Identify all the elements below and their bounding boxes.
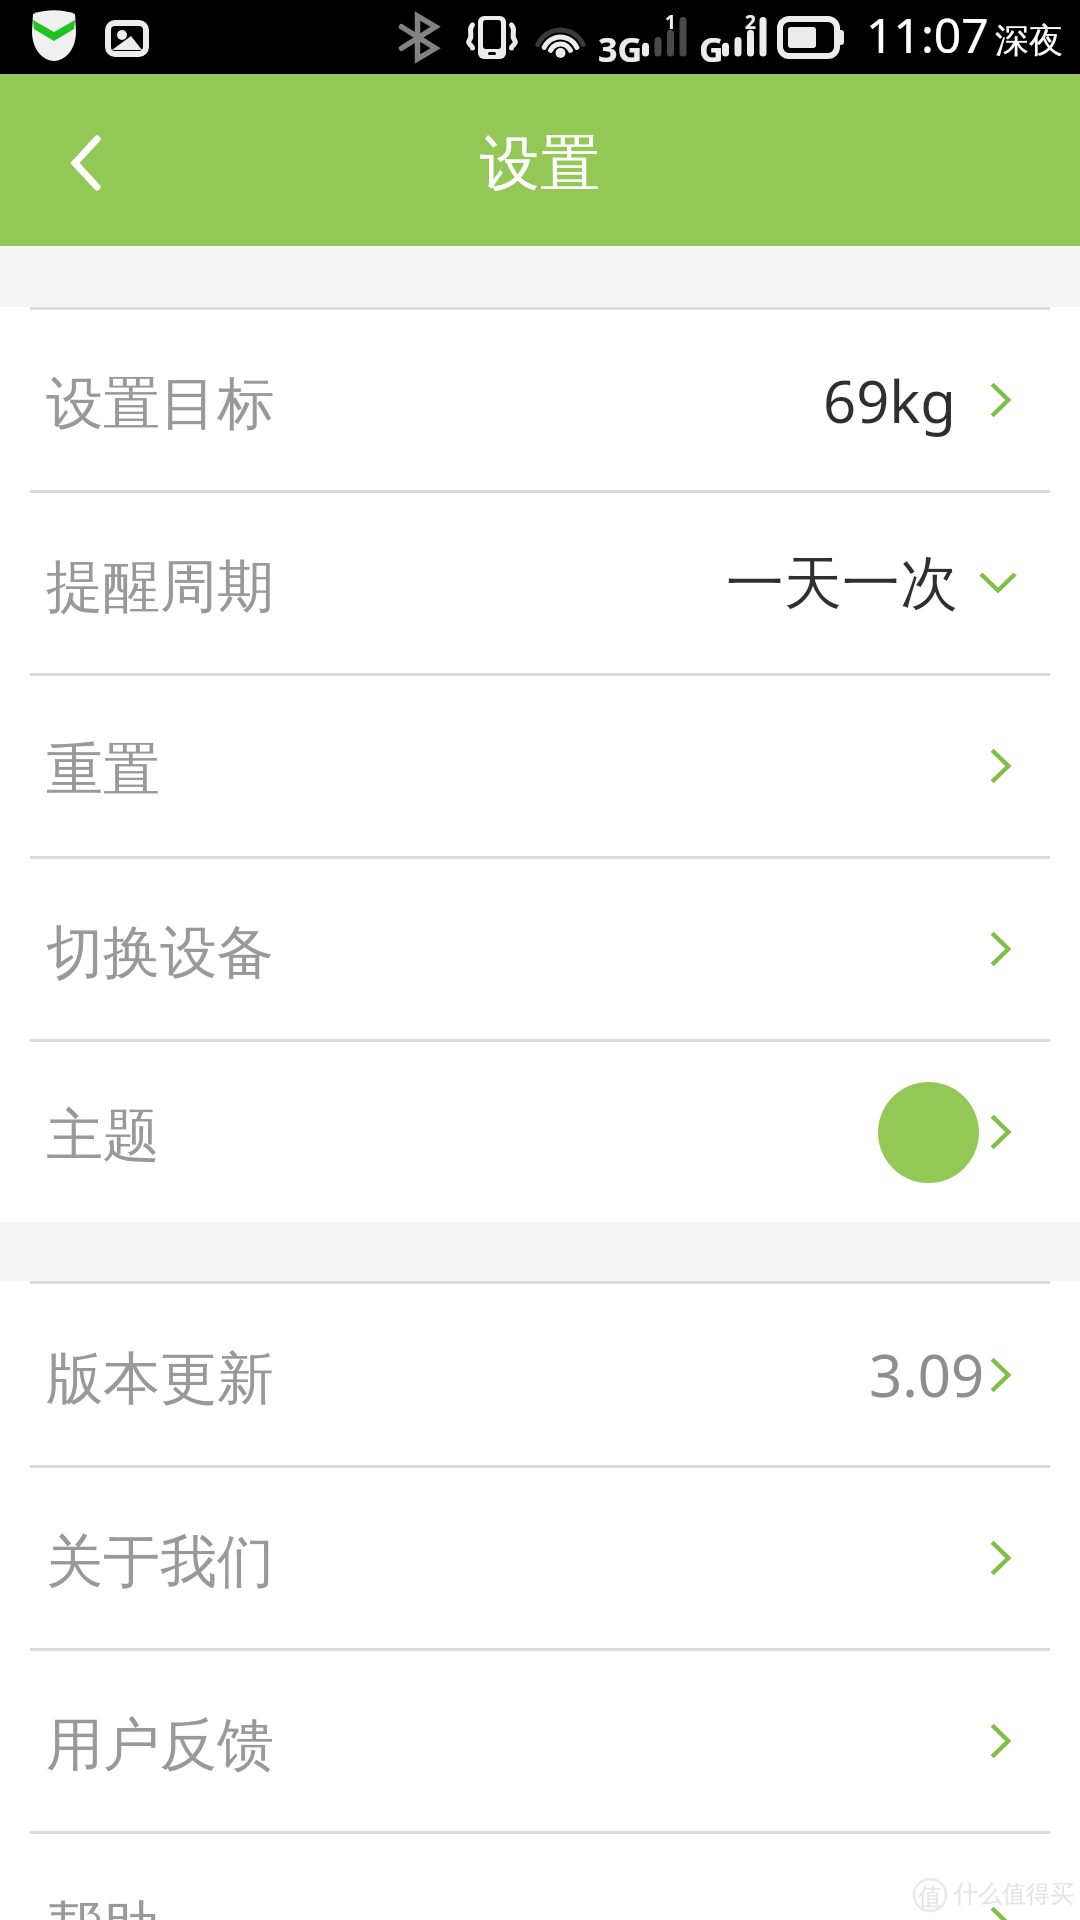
button[interactable]: 用户反馈 [0, 1651, 1080, 1831]
staticText: 重置 [46, 734, 160, 806]
button[interactable]: 帮助 [0, 1834, 1080, 1920]
staticText: 设置目标 [46, 368, 274, 440]
button[interactable]: 重置 [0, 676, 1080, 856]
staticText: 主题 [46, 1100, 160, 1172]
staticText: 值 [918, 1882, 942, 1912]
staticText: 切换设备 [46, 917, 274, 989]
button[interactable]: 切换设备 [0, 859, 1080, 1039]
button[interactable]: 设置目标 [0, 310, 1080, 490]
button[interactable]: 版本更新 [0, 1284, 1080, 1465]
staticText: 版本更新 [46, 1343, 274, 1415]
staticText: G [699, 26, 724, 72]
staticText: 1 [665, 9, 676, 35]
staticText: 3G [598, 26, 643, 72]
staticText: 关于我们 [46, 1526, 274, 1598]
staticText: 3.09 [869, 1335, 985, 1414]
staticText: 提醒周期 [46, 551, 274, 623]
staticText: 一天一次 [726, 547, 958, 620]
button[interactable]: 提醒周期 [0, 493, 1080, 673]
staticText: 设置 [480, 126, 600, 202]
staticText: 什么值得买 [954, 1879, 1074, 1909]
button[interactable]: 主题 [0, 1042, 1080, 1222]
button[interactable]: 关于我们 [0, 1468, 1080, 1648]
staticText: 69kg [823, 361, 956, 440]
staticText: 2 [745, 9, 756, 35]
staticText: 帮助 [46, 1892, 160, 1920]
staticText: 用户反馈 [46, 1709, 274, 1781]
staticText: 深夜 [995, 19, 1063, 62]
staticText: 11:07 [866, 2, 989, 67]
button[interactable]: Back [16, 90, 156, 230]
